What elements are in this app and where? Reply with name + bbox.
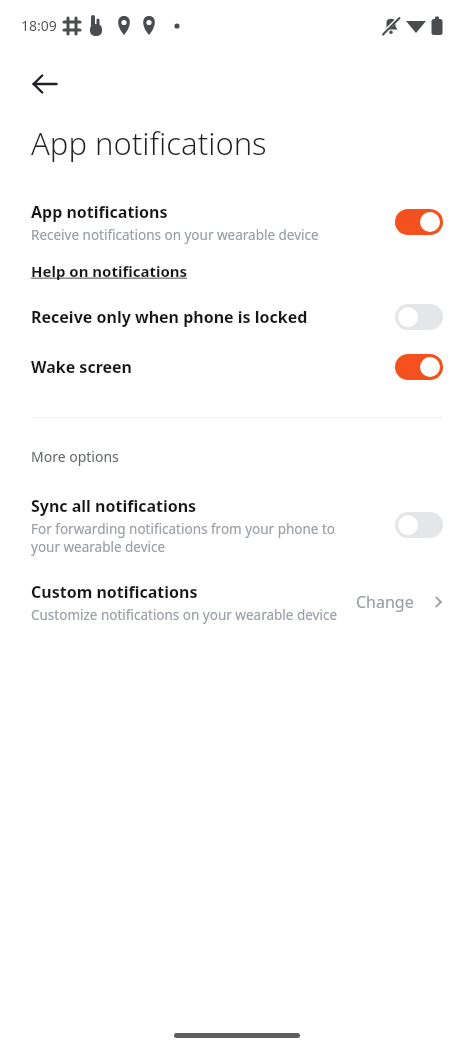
button[interactable]: Toggle off [395, 304, 443, 330]
staticText: Customize notifications on your wearable… [31, 606, 338, 624]
staticText: App notifications [31, 201, 168, 223]
staticText: For forwarding notifications from your p… [31, 520, 361, 556]
staticText: Wake screen [31, 356, 132, 378]
staticText: Change [356, 591, 414, 613]
button[interactable]: Receive only when phone is locked [0, 292, 474, 342]
staticText: Receive notifications on your wearable d… [31, 226, 371, 244]
staticText: 18:09 [21, 16, 57, 35]
staticText: More options [31, 447, 119, 466]
button[interactable]: Back [24, 62, 68, 106]
staticText: Help on notifications [31, 261, 188, 281]
staticText: App notifications [31, 122, 267, 164]
button[interactable]: Toggle on [395, 209, 443, 235]
button[interactable]: Toggle off [395, 512, 443, 538]
button[interactable]: App notifications [0, 194, 474, 250]
button[interactable]: Toggle on [395, 354, 443, 380]
button[interactable]: Sync all notifications [0, 490, 474, 560]
button[interactable]: Custom notifications [0, 572, 474, 632]
staticText: Receive only when phone is locked [31, 306, 308, 328]
button[interactable]: Wake screen [0, 342, 474, 392]
staticText: Custom notifications [31, 581, 198, 603]
staticText: Sync all notifications [31, 495, 197, 517]
button[interactable]: Help on notifications [0, 250, 474, 292]
